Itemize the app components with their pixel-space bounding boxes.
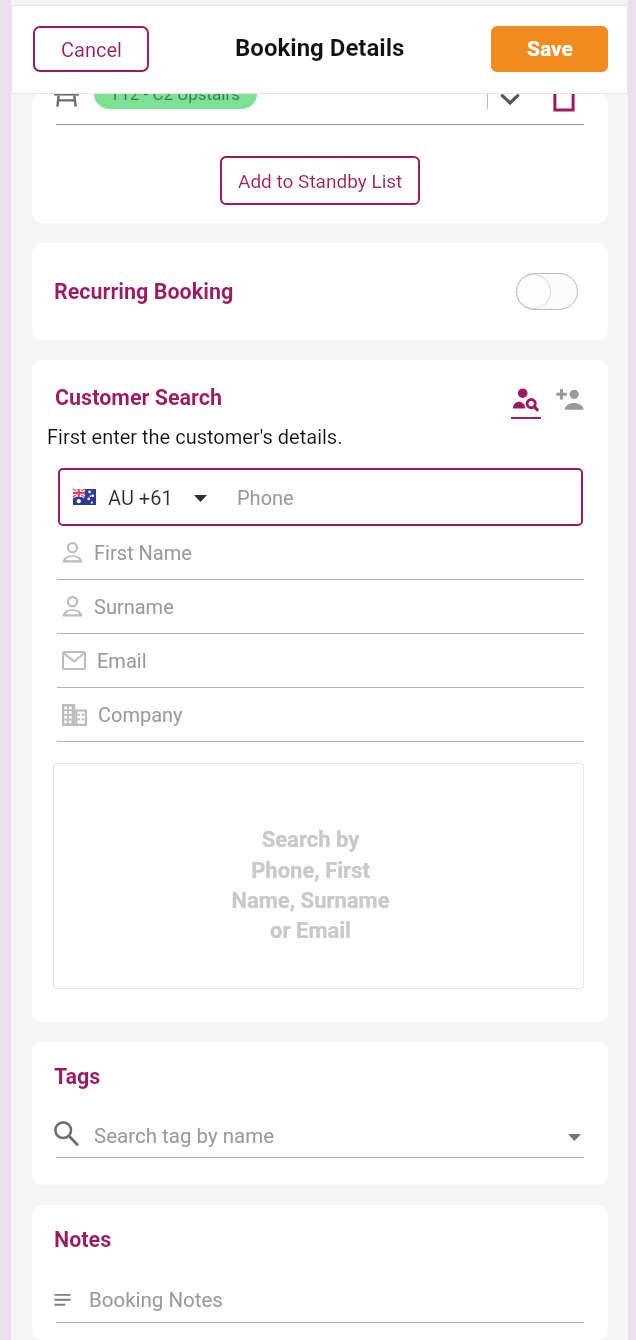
- button[interactable]: Search customer: [511, 388, 541, 419]
- staticText: Add to Standby List: [238, 170, 403, 192]
- button[interactable]: Add to Standby List: [220, 156, 420, 205]
- other: Select: [552, 94, 576, 113]
- button[interactable]: Cancel: [33, 26, 149, 72]
- button[interactable]: Recurring booking toggle: [516, 273, 578, 310]
- button[interactable]: Save: [491, 26, 608, 72]
- staticText: Tags: [54, 1064, 101, 1089]
- staticText: Search tag by name: [94, 1124, 275, 1148]
- staticText: T12 - C2 Upstairs: [110, 94, 241, 104]
- other: Expand: [499, 94, 521, 110]
- staticText: Booking Details: [235, 34, 405, 62]
- staticText: Customer Search: [55, 385, 223, 410]
- staticText: First Name: [94, 541, 192, 564]
- staticText: AU +61: [108, 486, 173, 509]
- staticText: Company: [98, 703, 183, 726]
- staticText: Notes: [54, 1227, 112, 1252]
- staticText: Recurring Booking: [54, 279, 234, 304]
- staticText: Booking Notes: [89, 1288, 223, 1312]
- staticText: Phone: [237, 486, 294, 509]
- staticText: First enter the customer's details.: [47, 425, 343, 448]
- staticText: Cancel: [61, 38, 122, 61]
- staticText: Search by Phone, First Name, Surname or …: [231, 827, 390, 943]
- staticText: Save: [527, 37, 573, 62]
- button[interactable]: Add customer: [556, 389, 584, 413]
- staticText: Email: [97, 649, 147, 672]
- staticText: Surname: [94, 595, 174, 618]
